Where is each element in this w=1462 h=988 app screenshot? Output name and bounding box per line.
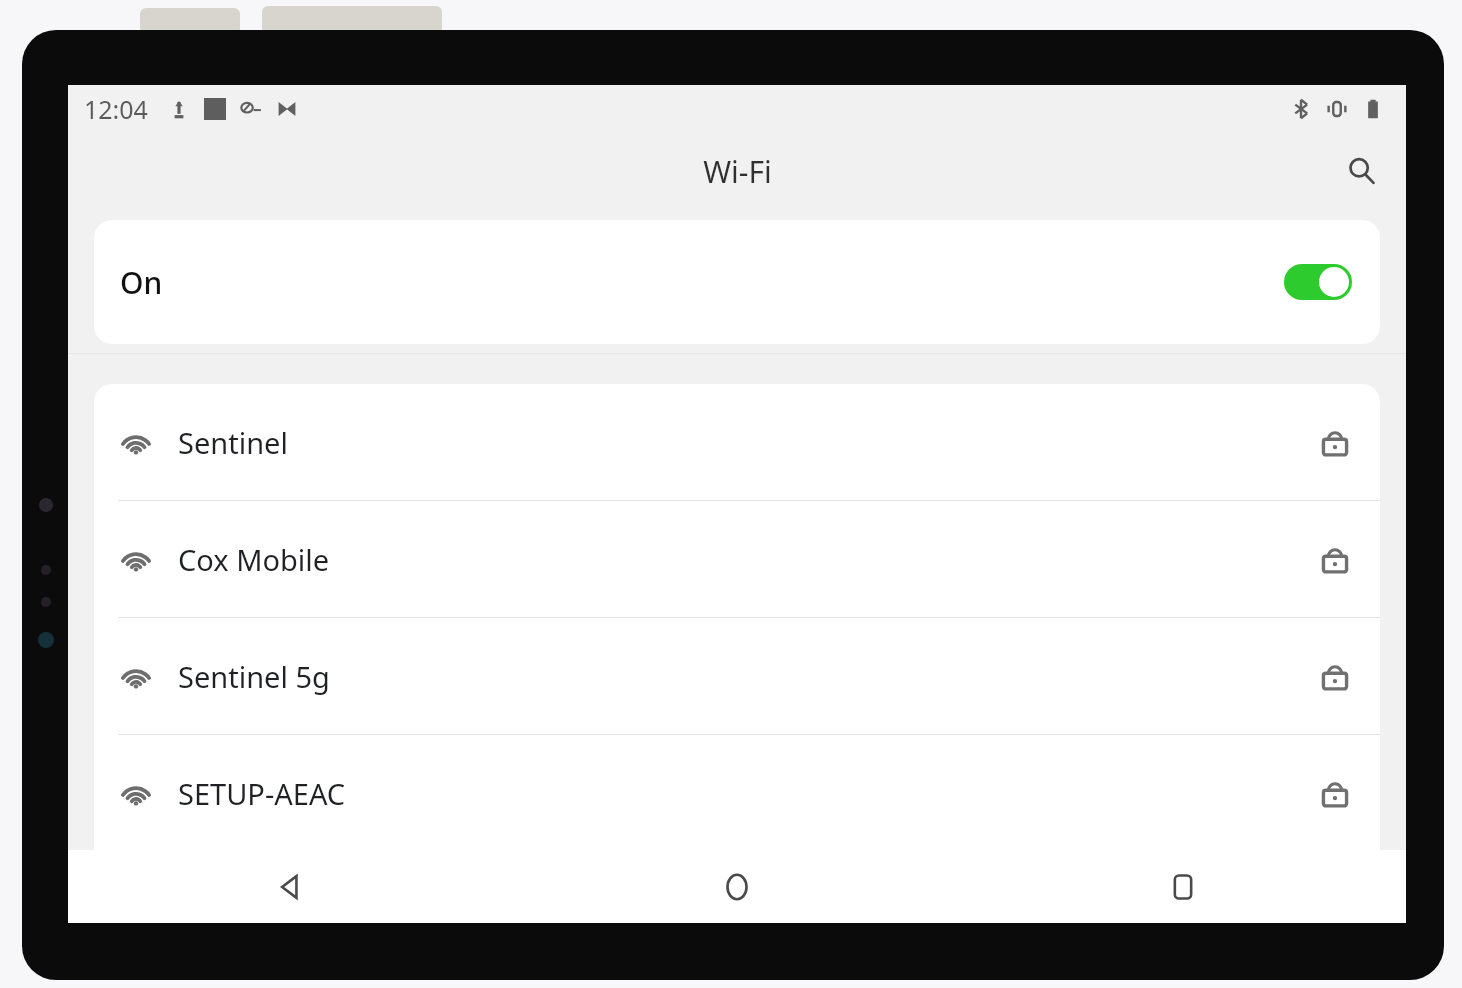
button[interactable]: Back <box>68 850 514 923</box>
button[interactable]: Sentinel <box>94 384 1380 500</box>
staticText: Wi-Fi <box>703 151 772 192</box>
button[interactable]: Cox Mobile <box>94 501 1380 617</box>
button[interactable]: Home <box>514 850 960 923</box>
staticText: SETUP-AEAC <box>178 774 346 813</box>
button[interactable]: SETUP-AEAC <box>94 735 1380 851</box>
staticText: Sentinel 5g <box>178 657 330 696</box>
button[interactable]: Recents <box>960 850 1406 923</box>
staticText: Sentinel <box>178 423 288 462</box>
button[interactable]: Sentinel 5g <box>94 618 1380 734</box>
staticText: Cox Mobile <box>178 540 330 579</box>
button[interactable]: Search <box>1334 143 1390 199</box>
button[interactable]: On <box>94 220 1380 344</box>
staticText: 12:04 <box>84 92 148 126</box>
button[interactable]: Wi-Fi toggle on <box>1284 264 1352 300</box>
staticText: On <box>120 262 163 303</box>
